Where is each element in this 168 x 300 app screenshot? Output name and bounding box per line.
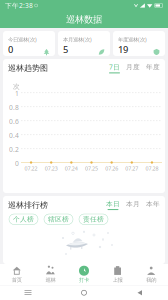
staticText: 07.22	[25, 165, 38, 172]
staticText: 上报	[113, 277, 123, 283]
staticText: 次	[13, 82, 20, 91]
staticText: 07.26	[105, 165, 118, 172]
staticText: 本月	[126, 200, 140, 208]
staticText: 07.24	[65, 165, 78, 172]
staticText: 月度	[126, 63, 140, 71]
staticText: 19	[118, 43, 128, 55]
staticText: 今日巡林(次)	[8, 36, 37, 43]
staticText: 打卡	[79, 277, 89, 283]
staticText: 年度巡林(次)	[118, 36, 147, 43]
staticText: 0.8	[9, 103, 19, 112]
button[interactable]: 巡林	[34, 263, 67, 286]
staticText: 首页	[12, 277, 22, 283]
staticText: 辖区榜	[48, 215, 69, 223]
staticText: 巡林排行榜	[8, 200, 48, 210]
staticText: 0	[8, 43, 13, 55]
staticText: 07.25	[85, 165, 98, 172]
staticText: 0	[15, 159, 19, 168]
staticText: 07.23	[45, 165, 58, 172]
button[interactable]: 打卡	[67, 263, 101, 286]
button[interactable]: Back	[112, 290, 168, 295]
staticText: 0.6	[9, 117, 19, 126]
staticText: 个人榜	[13, 215, 34, 223]
staticText: 07.28	[145, 165, 158, 172]
staticText: 本月巡林(次)	[63, 36, 92, 43]
staticText: 责任榜	[83, 215, 104, 223]
staticText: 本年	[146, 200, 160, 208]
staticText: 0.2	[9, 145, 19, 154]
button[interactable]: 今日巡林(次)	[3, 31, 55, 56]
staticText: 0.4	[9, 131, 19, 140]
staticText: 我的	[146, 277, 156, 283]
button[interactable]: 年度巡林(次)	[113, 31, 165, 56]
button[interactable]: 年度	[146, 63, 160, 73]
staticText: 年度	[146, 63, 160, 71]
button[interactable]: 本日	[106, 200, 120, 210]
staticText: 巡林趋势图	[8, 63, 48, 73]
button[interactable]: 个人榜	[9, 214, 38, 224]
staticText: 巡林	[45, 277, 55, 283]
staticText: 7日	[109, 63, 120, 71]
button[interactable]: Home	[56, 290, 112, 295]
button[interactable]: 月度	[126, 63, 140, 73]
button[interactable]: 本月巡林(次)	[58, 31, 110, 56]
button[interactable]: 7日	[109, 63, 120, 73]
button[interactable]: 责任榜	[79, 214, 108, 224]
staticText: 下午2:38	[5, 1, 33, 10]
staticText: 07.27	[125, 165, 138, 172]
staticText: 5	[63, 43, 68, 55]
button[interactable]: Recents	[0, 290, 56, 295]
staticText: 本日	[106, 200, 120, 208]
staticText: 巡林数据	[66, 14, 102, 25]
button[interactable]: 本月	[126, 200, 140, 210]
button[interactable]: 本年	[146, 200, 160, 210]
button[interactable]: 首页	[0, 263, 34, 286]
button[interactable]: 上报	[101, 263, 134, 286]
button[interactable]: 辖区榜	[44, 214, 73, 224]
button[interactable]: 我的	[134, 263, 168, 286]
staticText: 1	[15, 89, 19, 98]
